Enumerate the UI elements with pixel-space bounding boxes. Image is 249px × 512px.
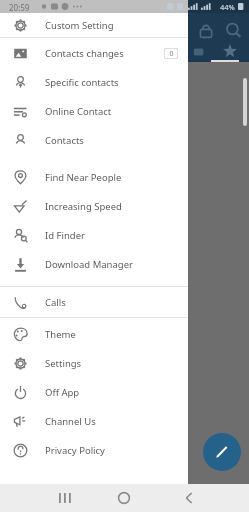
button[interactable]: Online Contact xyxy=(0,97,188,126)
staticText: Id Finder xyxy=(45,229,85,242)
staticText: Find Near People xyxy=(45,171,122,184)
button[interactable]: Recents xyxy=(45,484,83,512)
button[interactable]: Contacts xyxy=(0,126,188,155)
staticText: Theme xyxy=(45,328,76,341)
button[interactable]: Lock xyxy=(196,21,216,41)
button[interactable]: Back xyxy=(170,484,208,512)
staticText: Increasing Speed xyxy=(45,200,122,213)
staticText: 44% xyxy=(220,2,235,12)
button[interactable]: Camera tab xyxy=(193,44,209,60)
button[interactable]: Channel Us xyxy=(0,407,188,436)
staticText: 20:59 xyxy=(9,2,30,13)
button[interactable]: Increasing Speed xyxy=(0,192,188,221)
button[interactable]: Calls xyxy=(0,287,188,317)
staticText: 0 xyxy=(169,49,174,59)
staticText: Contacts changes xyxy=(45,47,124,60)
button[interactable]: Download Manager xyxy=(0,250,188,279)
button[interactable]: Specific contacts xyxy=(0,68,188,97)
staticText: Online Contact xyxy=(45,105,112,118)
staticText: Contacts xyxy=(45,134,84,147)
staticText: Download Manager xyxy=(45,258,133,271)
button[interactable]: Custom Setting xyxy=(0,13,188,37)
button[interactable]: Privacy Policy xyxy=(0,436,188,465)
button[interactable]: Off App xyxy=(0,378,188,407)
staticText: Settings xyxy=(45,357,82,370)
button[interactable]: Contacts changes xyxy=(0,38,188,68)
button[interactable]: Find Near People xyxy=(0,163,188,192)
button[interactable]: Home xyxy=(105,484,143,512)
staticText: Specific contacts xyxy=(45,76,119,89)
button[interactable]: Favorites tab xyxy=(222,43,238,59)
staticText: Off App xyxy=(45,386,80,399)
staticText: Channel Us xyxy=(45,415,96,428)
button[interactable]: Settings xyxy=(0,349,188,378)
button[interactable]: Theme xyxy=(0,320,188,349)
staticText: Privacy Policy xyxy=(45,444,105,457)
button[interactable]: Compose xyxy=(203,433,241,471)
staticText: Calls xyxy=(45,296,66,309)
button[interactable]: Id Finder xyxy=(0,221,188,250)
button[interactable]: Search xyxy=(224,21,244,41)
staticText: Custom Setting xyxy=(45,19,114,32)
